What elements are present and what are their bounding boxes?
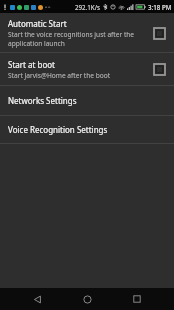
- button[interactable]: Recent apps: [126, 288, 148, 310]
- button[interactable]: Networks Settings: [0, 86, 174, 115]
- staticText: Start at boot: [8, 59, 55, 70]
- staticText: Automatic Start: [8, 18, 67, 29]
- staticText: Start the voice recognitions just after …: [8, 30, 144, 48]
- staticText: 292.1K/s: [75, 3, 100, 11]
- button[interactable]: Toggle Automatic Start: [150, 24, 168, 42]
- button[interactable]: Back: [26, 288, 48, 310]
- staticText: Voice Recognition Settings: [8, 124, 108, 135]
- staticText: 3:18 PM: [148, 3, 172, 11]
- button[interactable]: Automatic Start: [0, 13, 174, 52]
- button[interactable]: Start at boot: [0, 53, 174, 85]
- button[interactable]: Voice Recognition Settings: [0, 116, 174, 143]
- staticText: Networks Settings: [8, 95, 77, 106]
- button[interactable]: Toggle Start at boot: [150, 60, 168, 78]
- staticText: Start Jarvis@Home after the boot: [8, 71, 111, 80]
- button[interactable]: Home: [76, 288, 98, 310]
